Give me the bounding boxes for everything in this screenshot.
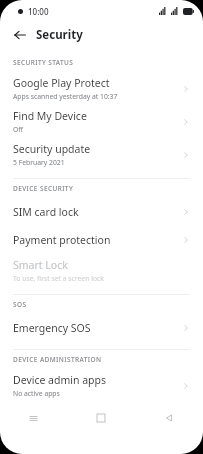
button[interactable]: SIM card lock [0, 198, 203, 226]
button[interactable]: Home [67, 406, 135, 430]
staticText: Apps scanned yesterday at 10:37 [13, 92, 118, 101]
button[interactable]: Recent apps [0, 406, 67, 430]
button[interactable]: Security update [0, 138, 203, 171]
staticText: Emergency SOS [13, 321, 91, 335]
staticText: Device admin apps [13, 373, 107, 387]
button[interactable]: Device admin apps [0, 369, 203, 402]
staticText: Security update [13, 142, 91, 156]
button[interactable]: Payment protection [0, 226, 203, 254]
button[interactable]: Find My Device [0, 105, 203, 138]
staticText: 5 February 2021 [13, 158, 65, 167]
staticText: Payment protection [13, 233, 111, 247]
button[interactable]: Back [9, 24, 31, 46]
staticText: SECURITY STATUS [13, 58, 74, 67]
button[interactable]: Google Play Protect [0, 72, 203, 105]
staticText: Security [36, 27, 83, 43]
staticText: 10:00 [28, 6, 49, 17]
button[interactable]: Emergency SOS [0, 314, 203, 342]
button[interactable]: Smart Lock [0, 254, 203, 287]
staticText: No active apps [13, 389, 60, 398]
staticText: SOS [13, 300, 27, 309]
staticText: DEVICE SECURITY [13, 184, 74, 193]
staticText: SIM card lock [13, 205, 79, 219]
staticText: DEVICE ADMINISTRATION [13, 355, 102, 364]
staticText: Google Play Protect [13, 76, 110, 90]
staticText: Smart Lock [13, 258, 68, 272]
staticText: Find My Device [13, 109, 87, 123]
staticText: To use, first set a screen lock [13, 274, 104, 283]
staticText: Off [13, 125, 23, 134]
button[interactable]: Back [135, 406, 203, 430]
